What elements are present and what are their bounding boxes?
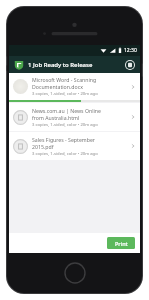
staticText: Sales Figures - September [32,136,95,143]
staticText: News.com.au | News Online [32,107,101,114]
other: Home [64,262,86,284]
button[interactable]: Print [107,237,135,249]
button[interactable]: News.com.au | News Online [9,103,140,131]
button[interactable]: Account [124,59,136,71]
staticText: Print [115,240,128,247]
staticText: 3 copies, 1-sided, color • 20m ago [32,151,98,157]
staticText: from Australia.html [32,114,80,121]
button[interactable]: App logo [13,59,24,70]
staticText: 3 copies, 1-sided, color • 20m ago [32,91,98,97]
staticText: 1 Job Ready to Release [28,61,124,69]
staticText: 12:30 [124,47,137,54]
staticText: 2015.pdf [32,143,54,150]
button[interactable]: Sales Figures - September [9,132,140,160]
button[interactable]: Microsoft Word - Scanning [9,73,140,102]
staticText: Documentation.docx [32,83,83,90]
staticText: 3 copies, 1-sided, color • 20m ago [32,122,98,128]
staticText: Microsoft Word - Scanning [32,76,97,83]
